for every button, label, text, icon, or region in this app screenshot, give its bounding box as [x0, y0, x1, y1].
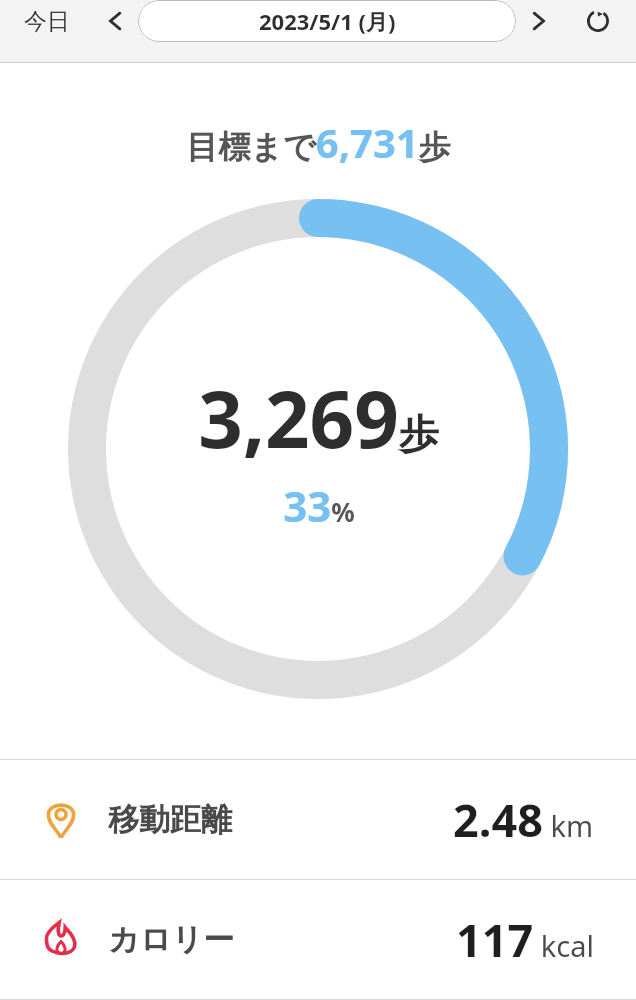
button[interactable]: カロリー	[0, 880, 636, 999]
staticText: 今日	[24, 7, 70, 36]
staticText: カロリー	[108, 920, 235, 959]
staticText: 33%	[283, 477, 355, 534]
button[interactable]: Refresh	[578, 1, 618, 41]
staticText: 2023/5/1 (月)	[259, 6, 396, 36]
button[interactable]: 今日	[18, 1, 76, 42]
button[interactable]: 2023/5/1 (月)	[138, 0, 516, 42]
button[interactable]: 移動距離	[0, 760, 636, 879]
staticText: 2.48 km	[453, 789, 594, 850]
button[interactable]: Next day	[522, 4, 556, 38]
staticText: 3,269歩	[198, 365, 439, 471]
button[interactable]: Previous day	[98, 4, 132, 38]
staticText: 目標まで6,731歩	[186, 115, 451, 169]
staticText: 117 kcal	[456, 909, 594, 970]
staticText: 移動距離	[108, 800, 232, 839]
